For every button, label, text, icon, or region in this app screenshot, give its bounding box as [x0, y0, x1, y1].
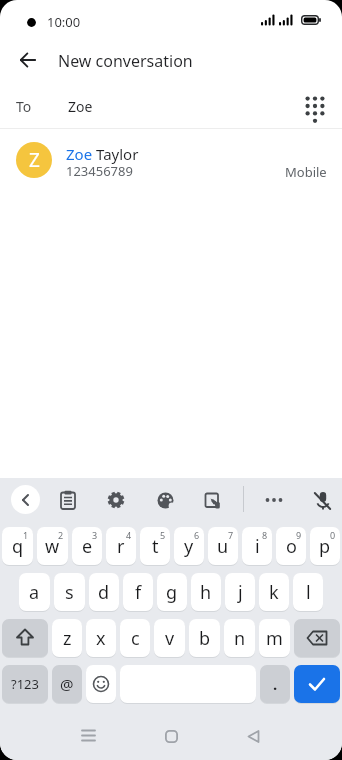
- staticText: l: [306, 580, 311, 605]
- button[interactable]: [294, 665, 340, 703]
- button[interactable]: s: [54, 573, 85, 611]
- button[interactable]: p: [310, 527, 340, 565]
- button[interactable]: [8, 40, 48, 80]
- staticText: .: [273, 674, 278, 694]
- button[interactable]: v: [154, 619, 185, 657]
- button[interactable]: o: [276, 527, 306, 565]
- staticText: c: [131, 626, 140, 651]
- button[interactable]: l: [293, 573, 323, 611]
- staticText: i: [255, 534, 260, 559]
- button[interactable]: @: [52, 665, 82, 703]
- staticText: b: [199, 626, 211, 651]
- button[interactable]: [71, 718, 107, 754]
- staticText: j: [238, 580, 243, 605]
- button[interactable]: t: [140, 527, 170, 565]
- button[interactable]: [51, 483, 85, 517]
- button[interactable]: [235, 718, 271, 754]
- staticText: d: [98, 580, 110, 605]
- staticText: s: [65, 580, 74, 605]
- staticText: 6: [194, 529, 200, 541]
- staticText: 0: [330, 529, 336, 541]
- staticText: Mobile: [285, 163, 327, 181]
- button[interactable]: g: [157, 573, 187, 611]
- staticText: New conversation: [58, 50, 193, 72]
- staticText: 9: [296, 529, 302, 541]
- button[interactable]: a: [19, 573, 50, 611]
- button[interactable]: r: [106, 527, 136, 565]
- button[interactable]: [195, 483, 229, 517]
- staticText: To: [16, 97, 32, 116]
- button[interactable]: c: [120, 619, 150, 657]
- staticText: q: [12, 534, 24, 559]
- staticText: z: [63, 626, 72, 651]
- staticText: Zoe Taylor: [66, 144, 139, 164]
- staticText: 2: [58, 529, 64, 541]
- staticText: 7: [228, 529, 234, 541]
- staticText: o: [286, 534, 297, 559]
- button[interactable]: n: [224, 619, 255, 657]
- button[interactable]: m: [259, 619, 290, 657]
- staticText: p: [319, 534, 331, 559]
- staticText: f: [135, 580, 142, 605]
- button[interactable]: k: [259, 573, 289, 611]
- staticText: t: [152, 534, 159, 559]
- button[interactable]: z: [52, 619, 82, 657]
- button[interactable]: [2, 619, 48, 657]
- staticText: Zoe: [68, 97, 93, 116]
- staticText: 5: [160, 529, 166, 541]
- button[interactable]: w: [37, 527, 68, 565]
- staticText: x: [96, 626, 106, 651]
- button[interactable]: [153, 718, 189, 754]
- button[interactable]: Z: [0, 129, 342, 191]
- button[interactable]: h: [191, 573, 221, 611]
- button[interactable]: x: [86, 619, 116, 657]
- button[interactable]: j: [225, 573, 255, 611]
- button[interactable]: b: [189, 619, 220, 657]
- button[interactable]: [295, 86, 335, 126]
- staticText: k: [269, 580, 279, 605]
- button[interactable]: ?123: [2, 665, 48, 703]
- staticText: 123456789: [66, 162, 133, 180]
- button[interactable]: [99, 483, 133, 517]
- button[interactable]: f: [123, 573, 153, 611]
- staticText: g: [166, 580, 178, 605]
- staticText: a: [29, 580, 40, 605]
- staticText: n: [234, 626, 246, 651]
- button[interactable]: e: [72, 527, 102, 565]
- staticText: 3: [92, 529, 98, 541]
- staticText: Z: [29, 147, 40, 173]
- staticText: r: [117, 534, 125, 559]
- staticText: w: [45, 534, 60, 559]
- staticText: h: [200, 580, 212, 605]
- staticText: 8: [262, 529, 268, 541]
- staticText: e: [82, 534, 93, 559]
- staticText: ?123: [11, 675, 39, 693]
- staticText: 1: [23, 529, 29, 541]
- button[interactable]: [305, 483, 339, 517]
- button[interactable]: u: [208, 527, 238, 565]
- staticText: 10:00: [47, 13, 81, 31]
- staticText: y: [184, 534, 194, 559]
- button[interactable]: [148, 483, 182, 517]
- staticText: v: [165, 626, 175, 651]
- button[interactable]: q: [2, 527, 33, 565]
- button[interactable]: .: [260, 665, 290, 703]
- button[interactable]: i: [242, 527, 272, 565]
- button[interactable]: [257, 483, 291, 517]
- button[interactable]: d: [89, 573, 119, 611]
- button[interactable]: [11, 485, 40, 514]
- button[interactable]: [294, 619, 340, 657]
- staticText: m: [266, 626, 283, 651]
- staticText: u: [217, 534, 229, 559]
- staticText: 4: [126, 529, 132, 541]
- button[interactable]: To: [0, 84, 342, 128]
- button[interactable]: y: [174, 527, 204, 565]
- button[interactable]: [86, 665, 116, 703]
- staticText: @: [60, 674, 74, 694]
